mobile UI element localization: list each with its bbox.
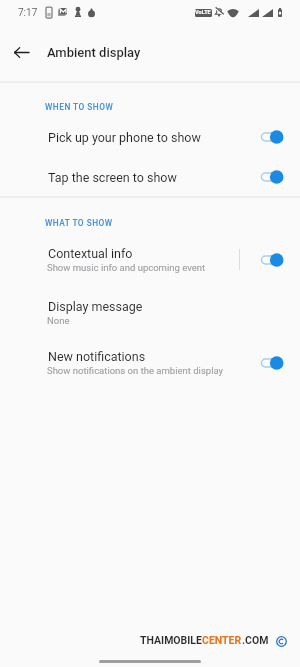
staticText: .COM: [242, 634, 269, 646]
staticText: CENTER: [202, 634, 242, 646]
button[interactable]: Toggle Pick up your phone to show: [258, 126, 284, 148]
staticText: Ambient display: [47, 45, 141, 60]
button[interactable]: Display message: [0, 289, 300, 335]
button[interactable]: Toggle Tap the screen to show: [258, 166, 284, 188]
staticText: VoLTE 1: [195, 9, 212, 17]
staticText: Show music info and upcoming event: [47, 262, 206, 273]
staticText: THAIMOBILE: [140, 634, 202, 646]
staticText: 7:17: [18, 7, 38, 19]
button[interactable]: Toggle Contextual info: [258, 249, 284, 271]
staticText: Pick up your phone to show: [48, 130, 201, 145]
button[interactable]: New notifications: [0, 339, 300, 385]
button[interactable]: Back: [7, 38, 36, 67]
staticText: Display message: [48, 299, 143, 314]
staticText: WHEN TO SHOW: [45, 102, 114, 112]
button[interactable]: Toggle New notifications: [258, 352, 284, 374]
staticText: Show notifications on the ambient displa…: [47, 365, 224, 376]
button[interactable]: Contextual info: [0, 236, 300, 282]
staticText: New notifications: [48, 349, 146, 364]
button[interactable]: Pick up your phone to show: [0, 120, 300, 158]
staticText: WHAT TO SHOW: [45, 218, 113, 228]
button[interactable]: Tap the screen to show: [0, 160, 300, 198]
staticText: None: [47, 315, 70, 326]
staticText: Tap the screen to show: [48, 170, 177, 185]
staticText: Contextual info: [48, 246, 133, 261]
